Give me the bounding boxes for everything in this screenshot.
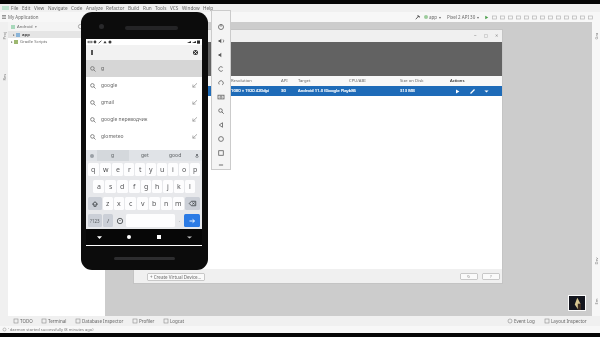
staticText: google переводчик (101, 116, 148, 123)
button[interactable]: i (168, 163, 178, 176)
staticText: c (129, 199, 133, 209)
staticText: Project (1, 31, 6, 39)
staticText: Target (298, 78, 311, 84)
button[interactable]: j (163, 180, 173, 193)
button[interactable]: Profiler (133, 318, 155, 324)
button[interactable]: f (129, 180, 140, 193)
button[interactable]: Emoji (114, 214, 125, 227)
staticText: 313 MB (400, 88, 415, 94)
button[interactable]: Help (482, 273, 500, 280)
button[interactable]: Home (214, 132, 228, 146)
button[interactable]: p (190, 163, 200, 176)
staticText: Logcat (170, 318, 185, 324)
button[interactable]: . (176, 214, 183, 227)
button[interactable]: Android (8, 22, 105, 31)
button[interactable]: Rotate right (214, 76, 228, 90)
staticText: p (193, 165, 198, 175)
staticText: Actions (450, 78, 465, 84)
button[interactable]: Terminal (42, 318, 67, 324)
button[interactable]: Recents (154, 232, 164, 242)
button[interactable]: Go (184, 214, 200, 227)
button[interactable]: Volume down (214, 48, 228, 62)
other: Run (484, 15, 489, 20)
button[interactable]: g (141, 180, 151, 193)
staticText: Refactor (106, 5, 125, 11)
button[interactable]: ▸ (8, 38, 105, 45)
staticText: TODO (20, 318, 33, 324)
button[interactable]: + Create Virtual Device... (150, 274, 202, 280)
button[interactable]: ▸ (8, 31, 105, 38)
button[interactable]: Database Inspector (76, 318, 124, 324)
button[interactable]: TODO (14, 318, 33, 324)
button[interactable]: e (112, 163, 123, 176)
button[interactable]: u (157, 163, 167, 176)
button[interactable]: x (114, 197, 124, 210)
staticText: File (11, 5, 19, 11)
staticText: glometeo (101, 133, 124, 140)
button[interactable]: Screenshot (214, 90, 228, 104)
button[interactable]: Event Log (508, 318, 535, 324)
button[interactable]: Zoom (214, 104, 228, 118)
button[interactable]: Clear (193, 50, 198, 55)
button[interactable]: h (152, 180, 162, 193)
button[interactable]: Logcat (164, 318, 185, 324)
button[interactable]: Shift (88, 197, 102, 210)
staticText: Resolution (231, 78, 252, 84)
button[interactable]: Overview (214, 146, 228, 160)
button[interactable]: t (135, 163, 145, 176)
button[interactable]: l (185, 180, 195, 193)
staticText: Analyze (86, 5, 103, 11)
button[interactable]: Volume up (214, 34, 228, 48)
button[interactable]: k (174, 180, 184, 193)
button[interactable]: d (117, 180, 128, 193)
button[interactable]: v (137, 197, 148, 210)
button[interactable]: w (100, 163, 111, 176)
staticText: . (179, 217, 181, 224)
button[interactable]: gmail (86, 94, 202, 111)
button[interactable]: Back (94, 232, 104, 242)
button[interactable]: Hide keyboard (184, 232, 194, 242)
staticText: k (177, 182, 181, 192)
button[interactable]: q (88, 163, 99, 176)
button[interactable]: Rotate left (214, 62, 228, 76)
button[interactable]: Back (214, 118, 228, 132)
button[interactable]: n (161, 197, 172, 210)
button[interactable]: c (125, 197, 136, 210)
button[interactable]: Power (214, 20, 228, 34)
button[interactable]: Home (124, 232, 134, 242)
button[interactable]: good (160, 150, 191, 161)
button[interactable]: m (173, 197, 184, 210)
button[interactable]: glometeo (86, 128, 202, 145)
button[interactable]: g (97, 150, 129, 161)
button[interactable]: b (149, 197, 160, 210)
button[interactable]: Layout Inspector (545, 318, 587, 324)
button[interactable]: Pixel 2 API 30 (133, 86, 503, 96)
button[interactable]: Collapse all (78, 24, 83, 29)
button[interactable]: r (124, 163, 134, 176)
button[interactable]: s (105, 180, 116, 193)
staticText: o (182, 165, 187, 175)
button[interactable]: More (214, 160, 228, 170)
staticText: VCS (170, 5, 179, 11)
button[interactable]: ?123 (88, 214, 102, 227)
button[interactable]: get (129, 150, 160, 161)
button[interactable]: Clear (86, 45, 202, 60)
staticText: g (144, 182, 149, 192)
button[interactable]: / (103, 214, 113, 227)
button[interactable]: Backspace (185, 197, 200, 210)
staticText: r (128, 165, 131, 175)
button[interactable]: z (103, 197, 113, 210)
button[interactable]: a (93, 180, 104, 193)
button[interactable]: google (86, 77, 202, 94)
button[interactable]: google переводчик (86, 111, 202, 128)
button[interactable]: y (146, 163, 156, 176)
staticText: f (133, 182, 136, 192)
staticText: My Application (8, 14, 39, 20)
button[interactable]: o (179, 163, 189, 176)
button[interactable]: g (86, 60, 202, 77)
button[interactable]: Refresh (460, 273, 478, 280)
staticText: app (429, 14, 438, 20)
